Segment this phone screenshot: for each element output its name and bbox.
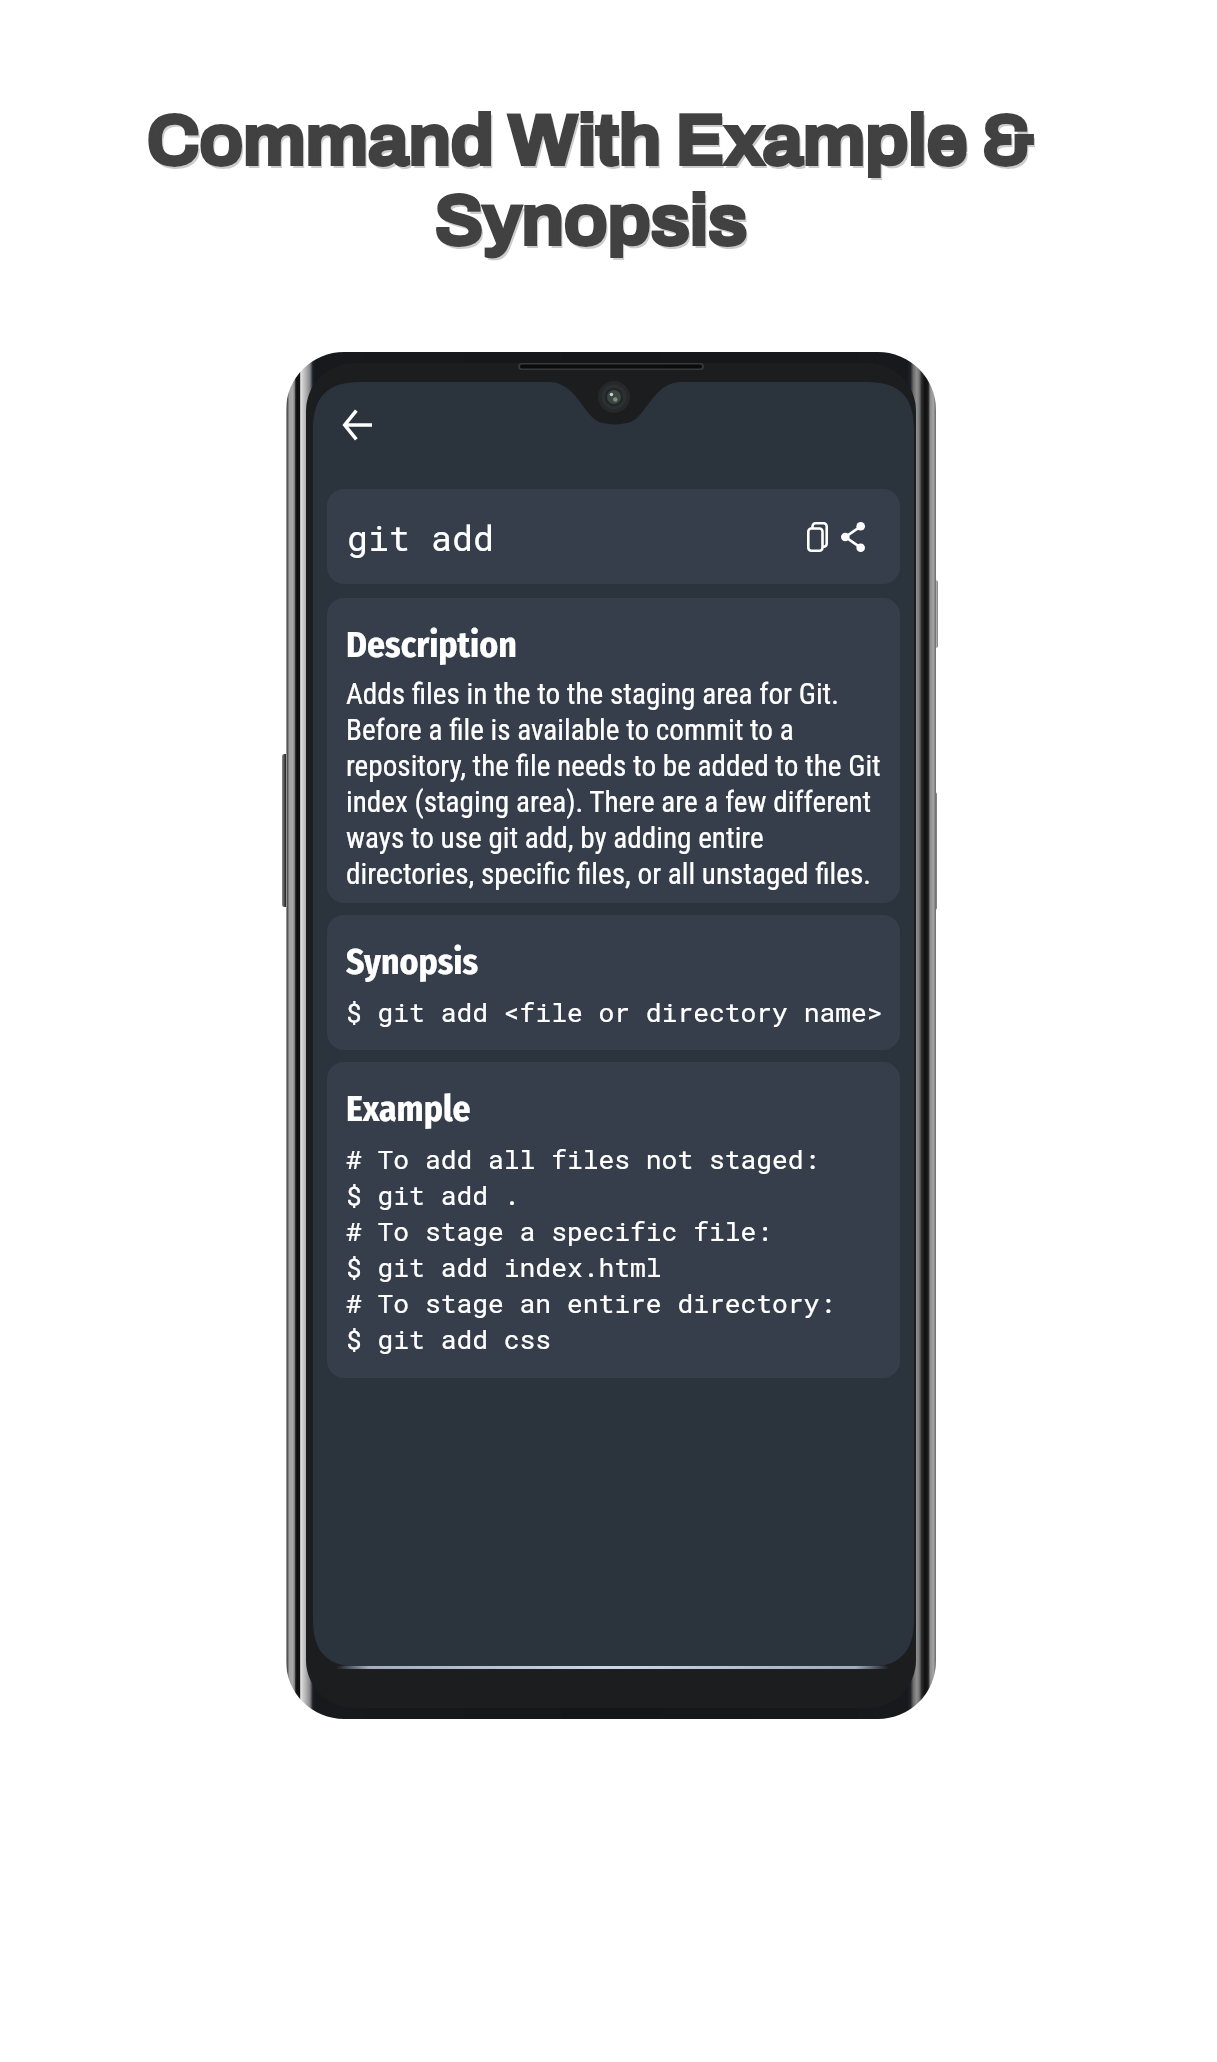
button[interactable]: Share [835,515,871,559]
button[interactable]: Synopsis [327,915,900,1050]
staticText: # To add all files not staged: $ git add… [346,1141,836,1356]
button[interactable]: Description [327,598,900,903]
button[interactable]: git add [327,489,900,584]
button[interactable]: Copy [800,515,834,559]
staticText: Synopsis [346,941,479,984]
button[interactable]: Back [327,396,387,454]
staticText: Command With Example & Synopsis [147,102,1035,258]
staticText: Adds files in the to the staging area fo… [346,677,888,891]
button[interactable]: Example [327,1062,900,1378]
staticText: Example [346,1088,471,1131]
staticText: Command With Example & Synopsis [149,105,1037,261]
staticText: Command With Example & Synopsis [147,102,1035,258]
staticText: $ git add <file or directory name> [346,994,883,1029]
staticText: git add [347,514,495,560]
staticText: Description [346,624,517,667]
